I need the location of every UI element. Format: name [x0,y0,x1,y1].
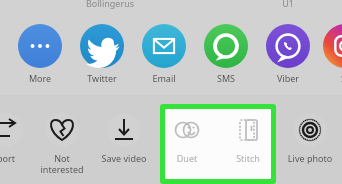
staticText: U1 [268,0,308,9]
staticText: Viber [254,72,322,84]
button[interactable]: More [6,24,74,86]
staticText: port [0,152,40,164]
staticText: St [311,72,342,84]
staticText: Twitter [68,72,136,84]
button[interactable]: Report [0,110,26,170]
staticText: Stitch [214,152,282,164]
button[interactable]: Instagram [311,24,342,86]
button[interactable]: SMS [192,24,260,86]
staticText: Email [130,72,198,84]
button[interactable]: Viber [254,24,322,86]
staticText: Save video [90,152,158,164]
button[interactable]: Save video [104,110,144,170]
button[interactable]: Live photo [290,110,330,170]
button[interactable]: Stitch [228,110,268,170]
button[interactable]: Duet [167,110,207,170]
staticText: Not interested [28,152,96,175]
staticText: Live photo [276,152,342,164]
staticText: Duet [153,152,221,164]
button[interactable]: Twitter [68,24,136,86]
button[interactable]: Duet and Stitch highlighted [160,104,276,184]
staticText: Bollingerus [62,0,158,9]
staticText: SMS [192,72,260,84]
button[interactable]: Not interested [42,110,82,170]
staticText: More [6,72,74,84]
button[interactable]: Email [130,24,198,86]
